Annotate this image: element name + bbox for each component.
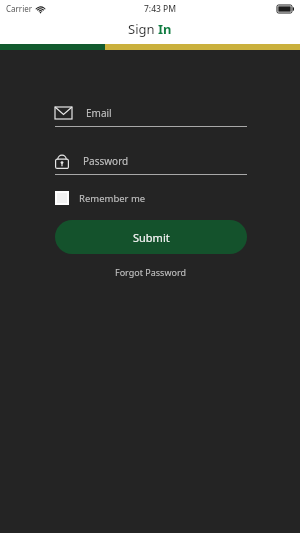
button[interactable]: Password <box>55 150 247 175</box>
button[interactable]: Email <box>55 102 247 127</box>
staticText: Password <box>83 154 129 168</box>
staticText: Email <box>86 106 112 120</box>
button[interactable]: Submit <box>55 220 247 254</box>
staticText: 7:43 PM <box>144 3 177 15</box>
button[interactable]: Remember me <box>55 191 247 205</box>
button[interactable]: Forgot Password <box>109 263 193 281</box>
staticText: Submit <box>133 230 170 245</box>
staticText: Remember me <box>79 192 146 205</box>
staticText: Sign In <box>128 20 172 38</box>
staticText: Carrier <box>6 3 33 14</box>
